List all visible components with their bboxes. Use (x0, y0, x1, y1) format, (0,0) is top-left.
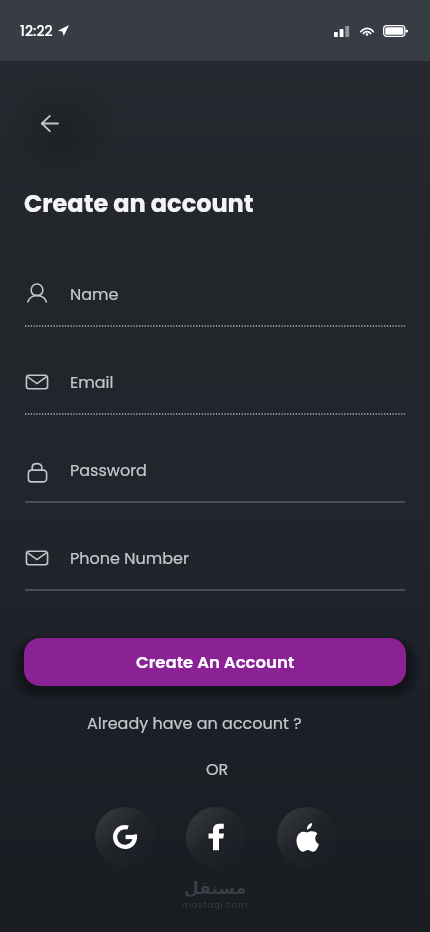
staticText: Phone Number (70, 547, 189, 569)
button[interactable]: Create An Account (24, 638, 406, 686)
button[interactable]: Sign in with Google (95, 807, 155, 867)
button[interactable]: Sign in with Facebook (186, 807, 246, 867)
button[interactable]: Already have an account ? (78, 710, 311, 736)
staticText: Already have an account ? (87, 712, 302, 734)
staticText: mostaqi.com (182, 899, 248, 912)
button[interactable]: Back (27, 101, 72, 146)
staticText: Create an account (24, 187, 254, 221)
staticText: Email (70, 371, 114, 393)
staticText: 12:22 (20, 21, 53, 41)
button[interactable]: Sign in with Apple (277, 807, 337, 867)
staticText: مستقل (184, 878, 247, 898)
staticText: Name (70, 283, 119, 305)
staticText: Create An Account (136, 651, 295, 674)
staticText: Password (70, 459, 147, 481)
staticText: OR (206, 758, 229, 780)
